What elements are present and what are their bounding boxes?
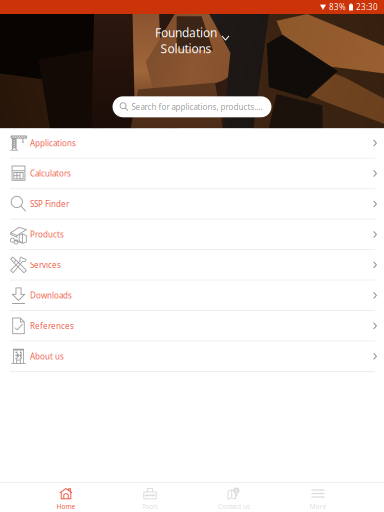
button[interactable]: Contact us: [192, 483, 276, 512]
button[interactable]: Home: [24, 483, 108, 512]
staticText: Search for applications, products....: [131, 101, 262, 112]
staticText: Foundation: [155, 25, 217, 40]
staticText: More: [309, 502, 326, 511]
staticText: 23:30: [356, 2, 378, 12]
staticText: SSP Finder: [30, 199, 69, 209]
staticText: Home: [56, 502, 75, 511]
button[interactable]: About us: [0, 342, 384, 372]
staticText: Solutions: [160, 41, 211, 56]
button[interactable]: More: [276, 483, 360, 512]
staticText: Tools: [142, 502, 158, 511]
button[interactable]: References: [0, 311, 384, 342]
staticText: 83%: [329, 2, 346, 12]
button[interactable]: Products: [0, 220, 384, 250]
button[interactable]: Applications: [0, 128, 384, 159]
staticText: Contact us: [218, 502, 250, 511]
staticText: Services: [30, 260, 61, 270]
staticText: Calculators: [30, 168, 71, 179]
button[interactable]: Downloads: [0, 281, 384, 311]
staticText: Applications: [30, 138, 76, 148]
button[interactable]: Services: [0, 250, 384, 281]
staticText: Products: [30, 229, 64, 240]
staticText: About us: [30, 351, 64, 362]
button[interactable]: Tools: [108, 483, 192, 512]
staticText: Downloads: [30, 290, 72, 301]
button[interactable]: SSP Finder: [0, 189, 384, 220]
staticText: References: [30, 320, 74, 331]
button[interactable]: Calculators: [0, 159, 384, 189]
